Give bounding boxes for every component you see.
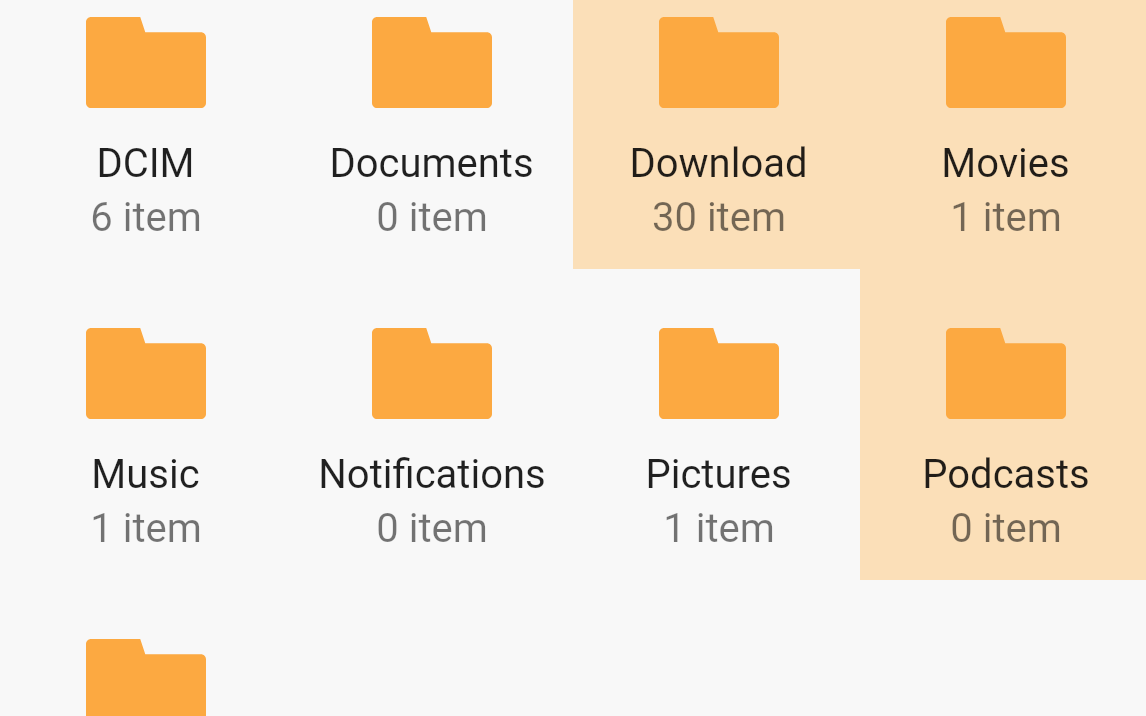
staticText: Download — [629, 140, 808, 187]
staticText: 6 item — [90, 194, 202, 241]
staticText: 1 item — [950, 194, 1062, 241]
staticText: 1 item — [90, 505, 202, 552]
staticText: Podcasts — [922, 451, 1090, 498]
button[interactable]: Documents folder, 0 item — [286, 0, 573, 269]
button[interactable]: Ringtones folder, 0 item — [0, 580, 287, 716]
staticText: 0 item — [376, 194, 488, 241]
staticText: 30 item — [652, 194, 786, 241]
staticText: 0 item — [376, 505, 488, 552]
staticText: 1 item — [663, 505, 775, 552]
staticText: Documents — [329, 140, 534, 187]
button[interactable]: DCIM folder, 6 item — [0, 0, 287, 269]
staticText: DCIM — [96, 140, 195, 187]
button[interactable]: Pictures folder, 1 item — [573, 269, 860, 580]
staticText: 0 item — [950, 505, 1062, 552]
button[interactable]: Movies folder, 1 item, selected — [860, 0, 1146, 269]
staticText: Music — [91, 451, 200, 498]
button[interactable]: Podcasts folder, 0 item, selected — [860, 269, 1146, 580]
button[interactable]: Download folder, 30 item, selected — [573, 0, 860, 269]
button[interactable]: Music folder, 1 item — [0, 269, 287, 580]
staticText: Notifications — [318, 451, 546, 498]
staticText: Pictures — [645, 451, 792, 498]
staticText: Movies — [941, 140, 1070, 187]
button[interactable]: Notifications folder, 0 item — [286, 269, 573, 580]
